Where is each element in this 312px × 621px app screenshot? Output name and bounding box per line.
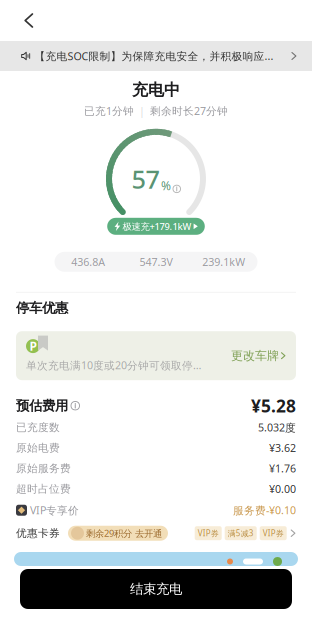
staticText: 【充电SOC限制】为保障充电安全，并积极响应主管…	[35, 49, 281, 63]
staticText: %	[161, 178, 171, 194]
staticText: ¥1.76	[269, 461, 296, 476]
button[interactable]: 结束充电	[20, 569, 292, 609]
staticText: 5.032度	[258, 420, 296, 435]
button[interactable]: 【充电SOC限制】为保障充电安全，并积极响应主管…	[0, 41, 312, 71]
staticText: 57	[131, 162, 159, 196]
staticText: 已充度数	[16, 421, 60, 434]
staticText: 服务费-¥0.10	[233, 503, 296, 517]
staticText: VIP专享价	[30, 503, 79, 517]
button[interactable]: 极速充+179.1kW	[107, 218, 205, 235]
button[interactable]: P	[16, 331, 296, 380]
staticText: 已充1分钟	[84, 104, 134, 118]
staticText: 结束充电	[130, 581, 182, 597]
staticText: 剩余时长27分钟	[150, 104, 228, 118]
staticText: 436.8A	[71, 255, 105, 269]
staticText: 极速充+179.1kW	[123, 220, 192, 232]
staticText: 停车优惠	[16, 300, 68, 316]
staticText: 单次充电满10度或20分钟可领取停…	[26, 358, 201, 372]
staticText: 547.3V	[139, 255, 172, 269]
button[interactable]: 优惠卡券	[16, 523, 296, 543]
staticText: 更改车牌	[231, 348, 279, 363]
staticText: ¥5.28	[251, 394, 296, 417]
staticText: 预估费用	[16, 397, 68, 414]
staticText: 超时占位费	[16, 482, 71, 495]
button[interactable]: Back	[0, 0, 46, 41]
staticText: VIP券	[263, 528, 284, 539]
staticText: 满5减3	[228, 528, 254, 538]
staticText: 优惠卡券	[16, 527, 60, 540]
staticText: 原始服务费	[16, 462, 71, 475]
staticText: 充电中	[132, 80, 180, 100]
staticText: ¥3.62	[269, 441, 296, 455]
staticText: |	[139, 104, 145, 118]
staticText: 剩余29积分 去开通	[86, 527, 162, 539]
staticText: 239.1kW	[202, 255, 245, 269]
staticText: VIP券	[198, 528, 219, 539]
staticText: 原始电费	[16, 441, 60, 454]
staticText: P	[29, 338, 36, 354]
staticText: ¥0.00	[269, 482, 296, 496]
